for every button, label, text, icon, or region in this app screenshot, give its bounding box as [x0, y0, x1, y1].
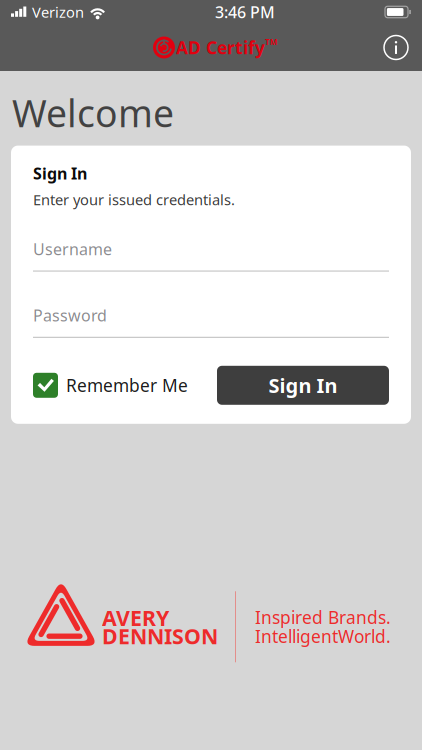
staticText: Username: [33, 238, 112, 259]
staticText: Enter your issued credentials.: [33, 190, 235, 209]
staticText: 3:46 PM: [215, 1, 275, 23]
staticText: Sign In: [268, 372, 337, 399]
button[interactable]: Sign In: [217, 366, 389, 405]
button[interactable]: Information: [370, 26, 422, 68]
staticText: Welcome: [12, 88, 174, 138]
staticText: Inspired Brands.: [255, 606, 391, 629]
staticText: AVERY: [102, 603, 169, 632]
staticText: DENNISON: [102, 622, 218, 650]
staticText: Password: [33, 305, 107, 326]
staticText: Sign In: [33, 163, 87, 184]
button[interactable]: Remember Me: [33, 366, 188, 405]
staticText: AD Certify: [176, 36, 265, 59]
staticText: IntelligentWorld.: [255, 625, 391, 648]
staticText: Verizon: [32, 2, 84, 22]
staticText: Remember Me: [66, 374, 188, 397]
staticText: TM: [265, 37, 278, 47]
